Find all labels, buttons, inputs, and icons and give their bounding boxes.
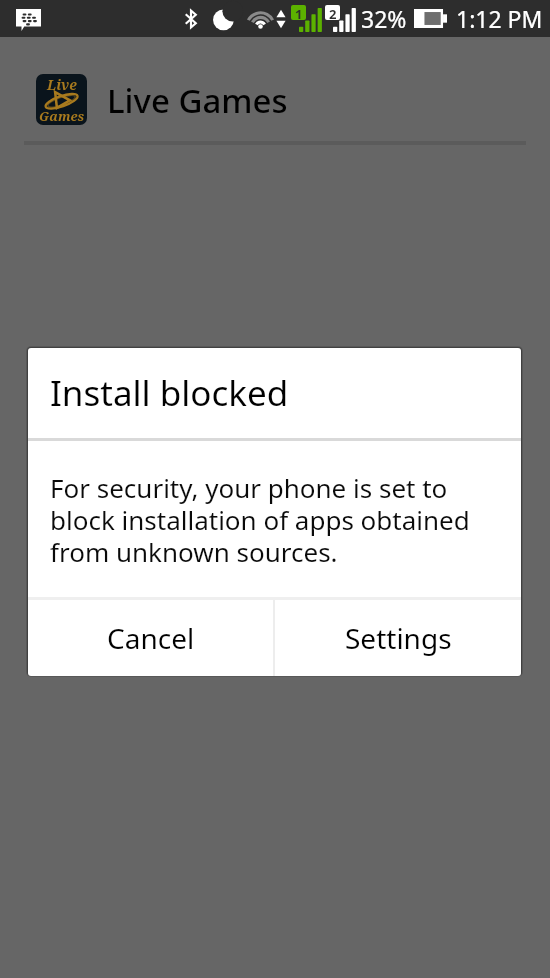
staticText: 1:12 PM bbox=[456, 3, 543, 34]
staticText: Games bbox=[39, 107, 85, 125]
staticText: Cancel bbox=[107, 619, 195, 657]
button[interactable]: Cancel bbox=[28, 600, 273, 676]
staticText: 32% bbox=[361, 3, 407, 34]
staticText: Install blocked bbox=[50, 369, 289, 417]
staticText: 1 bbox=[295, 5, 303, 20]
staticText: For security, your phone is set to block… bbox=[50, 470, 499, 570]
staticText: Live Games bbox=[107, 78, 288, 123]
button[interactable]: Settings bbox=[275, 600, 521, 676]
staticText: Settings bbox=[345, 619, 452, 657]
staticText: Live bbox=[47, 75, 77, 94]
button[interactable]: Live Games app bbox=[36, 74, 550, 125]
staticText: 2 bbox=[329, 5, 337, 20]
